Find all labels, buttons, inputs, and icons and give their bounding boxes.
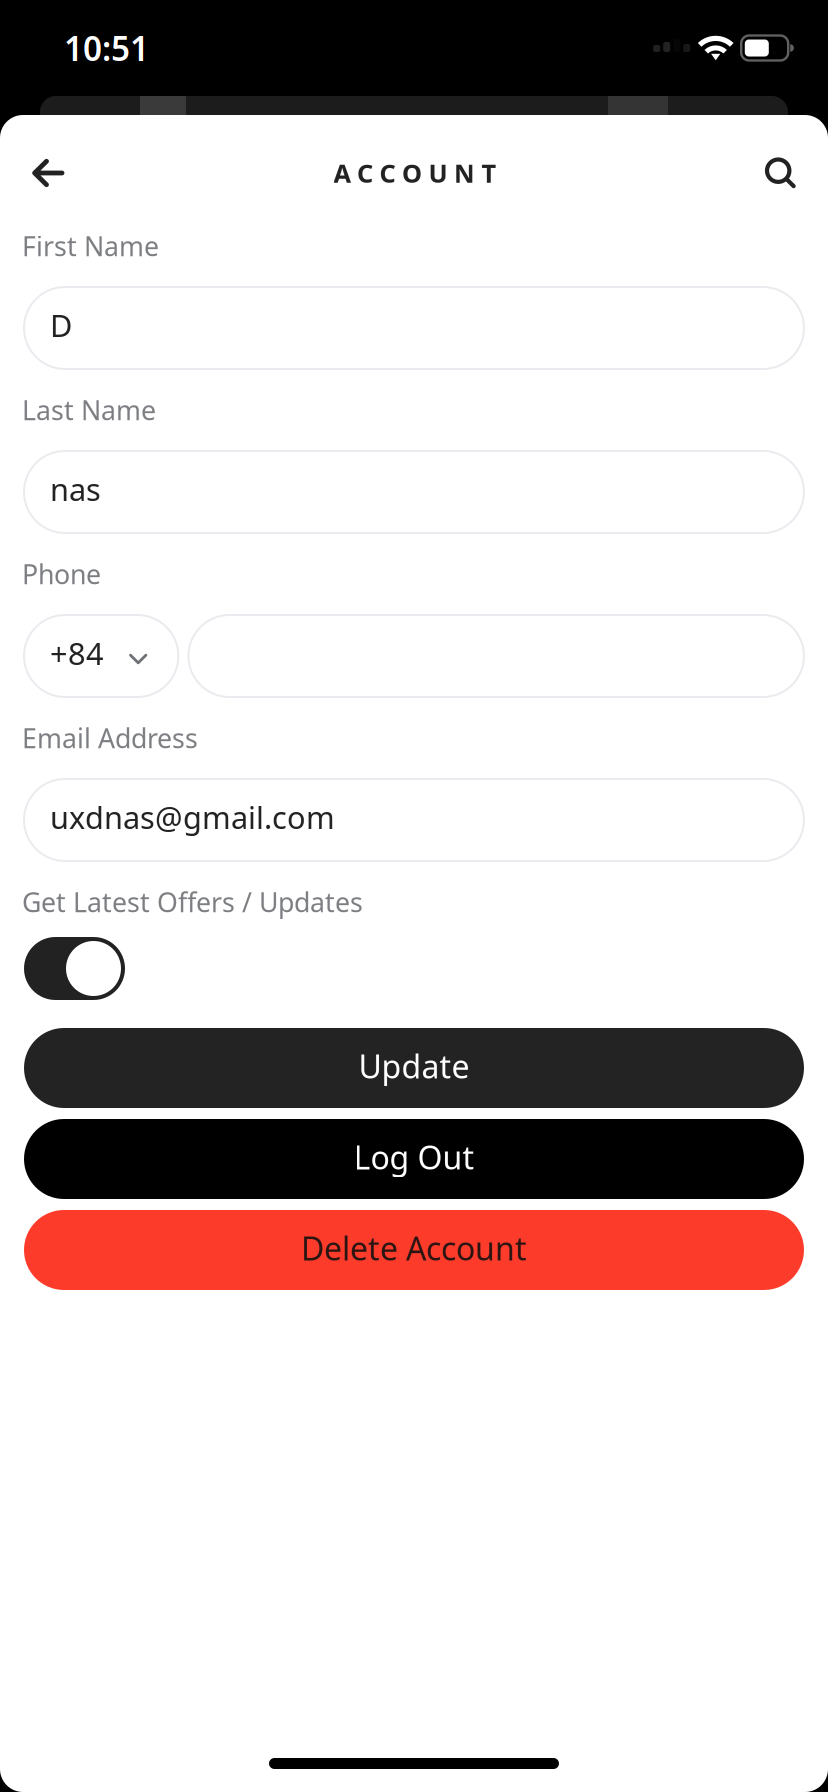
staticText: Delete Account: [301, 1227, 527, 1269]
staticText: ACCOUNT: [333, 156, 496, 190]
staticText: Update: [358, 1045, 469, 1087]
button[interactable]: uxdnas@gmail.com: [24, 779, 804, 861]
staticText: First Name: [22, 228, 159, 264]
button[interactable]: Delete Account: [24, 1210, 804, 1290]
button[interactable]: [188, 615, 804, 697]
staticText: uxdnas@gmail.com: [50, 797, 335, 837]
button[interactable]: nas: [24, 451, 804, 533]
staticText: D: [50, 305, 72, 345]
staticText: Phone: [22, 556, 101, 592]
button[interactable]: Get Latest Offers / Updates: [24, 937, 125, 1000]
button[interactable]: +84: [24, 615, 178, 697]
staticText: Email Address: [22, 720, 198, 756]
staticText: +84: [50, 633, 104, 673]
staticText: Get Latest Offers / Updates: [22, 884, 363, 920]
button[interactable]: Log Out: [24, 1119, 804, 1199]
staticText: nas: [50, 469, 101, 509]
staticText: Last Name: [22, 392, 156, 428]
button[interactable]: Search: [756, 148, 805, 197]
button[interactable]: Update: [24, 1028, 804, 1108]
button[interactable]: Back: [23, 150, 72, 196]
button[interactable]: D: [24, 287, 804, 369]
staticText: Log Out: [353, 1136, 474, 1178]
staticText: 10:51: [64, 26, 149, 70]
